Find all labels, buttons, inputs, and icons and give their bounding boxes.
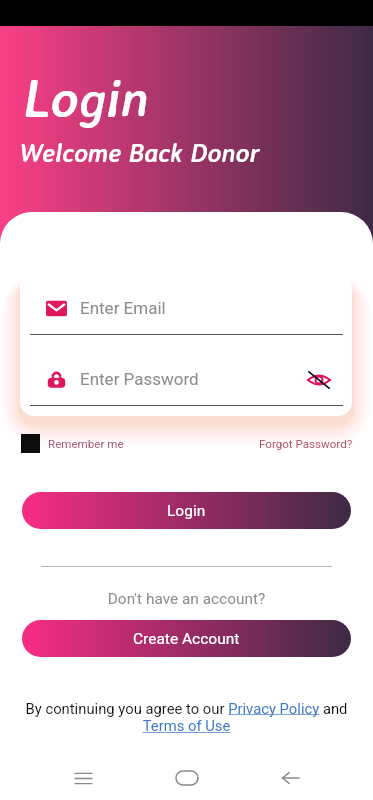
staticText: Create Account [133, 630, 240, 648]
button[interactable]: Create Account [22, 620, 351, 657]
staticText: Remember me [48, 437, 124, 451]
button[interactable]: Login [22, 492, 351, 529]
button[interactable]: Remember me [21, 434, 124, 453]
button[interactable]: Back [269, 757, 311, 799]
staticText: By continuing you agree to our Privacy P… [10, 700, 363, 735]
staticText: Login [167, 502, 206, 520]
staticText: Don't have an account? [0, 590, 373, 608]
staticText: Welcome Back Donor [19, 136, 260, 168]
staticText: Login [23, 65, 149, 129]
staticText: Enter Password [80, 369, 199, 389]
button[interactable]: Forgot Password? [259, 437, 353, 451]
staticText: Forgot Password? [259, 437, 353, 451]
button[interactable]: Recent apps [62, 757, 104, 799]
button[interactable]: Show password [305, 366, 332, 393]
staticText: Enter Email [80, 298, 166, 318]
button[interactable]: Home [166, 757, 208, 799]
